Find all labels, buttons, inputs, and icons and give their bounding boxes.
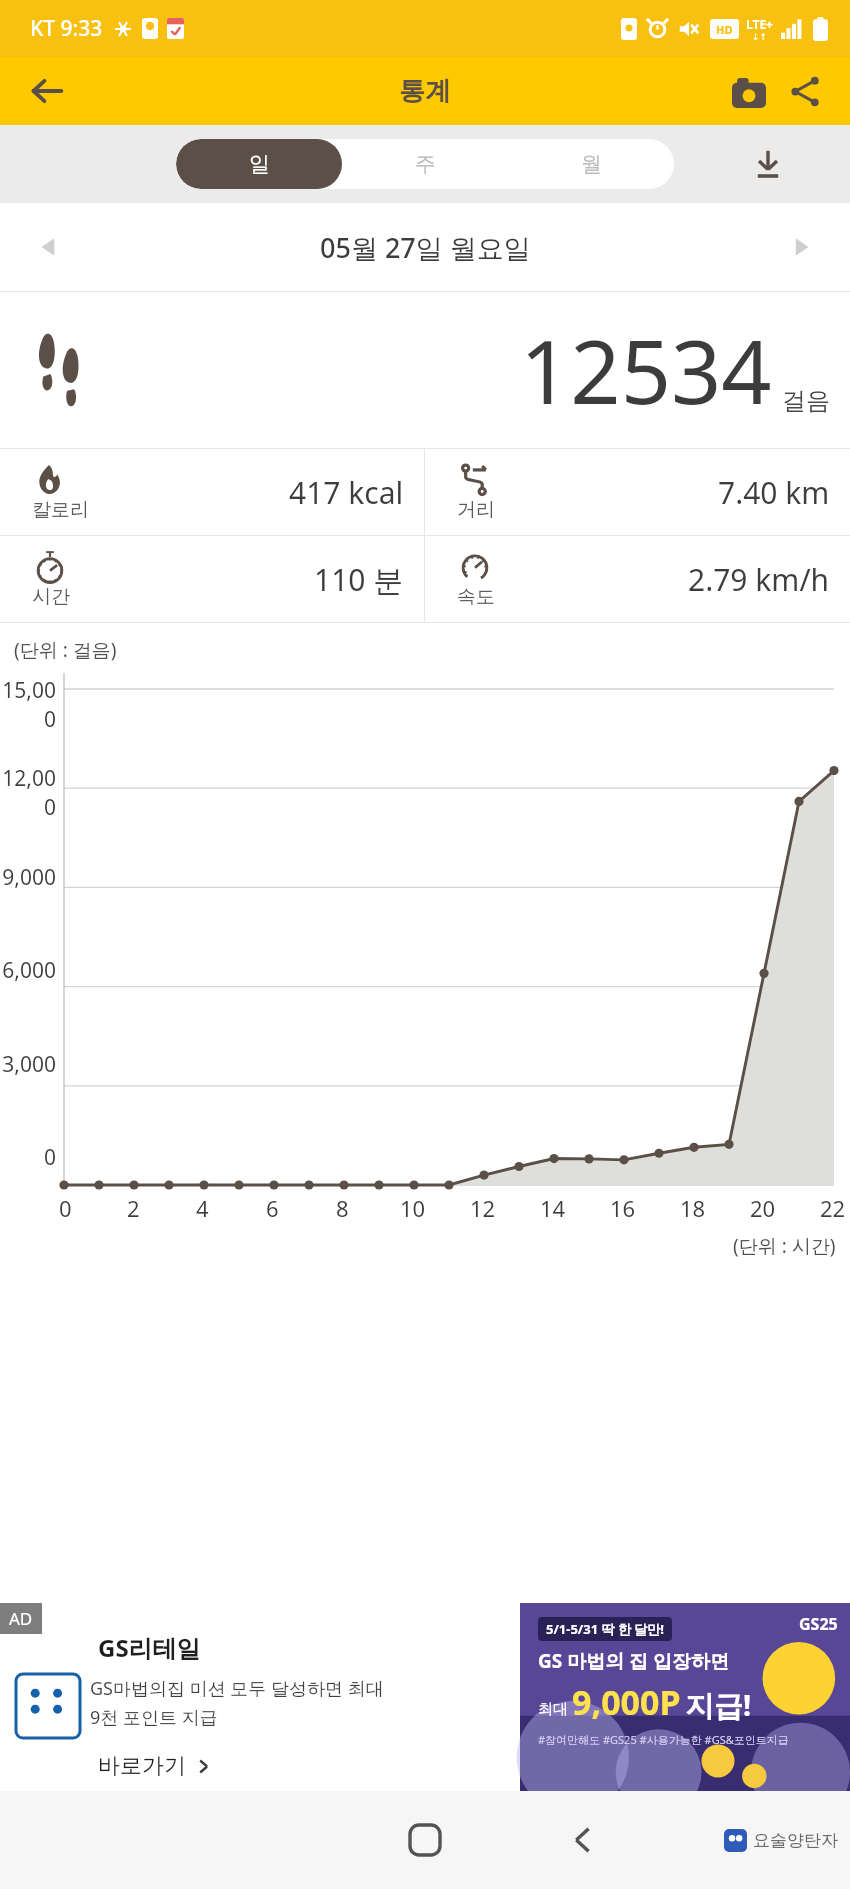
staticText: 월 — [581, 151, 602, 177]
button[interactable]: Back — [552, 1809, 614, 1871]
button[interactable]: 바로가기 — [98, 1752, 211, 1780]
staticText: GS마법의집 미션 모두 달성하면 최대 — [90, 1676, 384, 1701]
button[interactable]: 일 — [176, 139, 342, 189]
staticText: 22 — [820, 1193, 846, 1223]
staticText: 5/1-5/31 딱 한 달만! — [546, 1620, 664, 1638]
staticText: 20 — [750, 1193, 776, 1223]
staticText: 6 — [266, 1193, 279, 1223]
staticText: LTE+ — [746, 16, 773, 32]
staticText: 3,000 — [0, 1050, 56, 1079]
staticText: 최대 — [538, 1700, 568, 1719]
staticText: 칼로리 — [32, 498, 89, 522]
button[interactable]: 속도 — [425, 536, 850, 622]
staticText: (단위 : 걸음) — [14, 637, 117, 663]
button[interactable]: Home — [394, 1809, 456, 1871]
staticText: 9,000 — [0, 863, 56, 892]
staticText: GS리테일 — [98, 1631, 201, 1664]
staticText: 요술양탄자 — [753, 1830, 838, 1851]
button[interactable]: Next day — [778, 224, 824, 270]
staticText: 18 — [680, 1193, 706, 1223]
staticText: 걸음 — [782, 386, 830, 416]
staticText: AD — [9, 1607, 33, 1630]
staticText: (단위 : 시간) — [733, 1233, 836, 1259]
staticText: GS 마법의 집 입장하면 — [538, 1648, 730, 1674]
button[interactable]: Camera — [722, 64, 776, 118]
staticText: 9천 포인트 지급 — [90, 1705, 218, 1730]
button[interactable]: Share — [778, 64, 832, 118]
staticText: 14 — [540, 1193, 566, 1223]
staticText: 시간 — [32, 585, 70, 609]
staticText: 05월 27일 월요일 — [320, 229, 531, 266]
button[interactable]: Back — [20, 64, 74, 118]
staticText: ↓↑ — [752, 32, 768, 42]
button[interactable]: 거리 — [425, 449, 850, 535]
staticText: 주 — [415, 151, 436, 177]
staticText: 0 — [0, 1143, 56, 1172]
staticText: 일 — [249, 151, 270, 177]
staticText: GS25 — [799, 1613, 838, 1635]
button[interactable]: GS리테일 — [0, 1603, 520, 1791]
staticText: 12534 — [520, 310, 772, 430]
staticText: 6,000 — [0, 956, 56, 985]
button[interactable]: 월 — [508, 139, 674, 189]
staticText: #참여만해도 #GS25 #사용가능한 #GS&포인트지급 — [538, 1732, 789, 1747]
staticText: 지급! — [685, 1685, 752, 1725]
staticText: 417 kcal — [289, 472, 404, 513]
staticText: 바로가기 — [98, 1752, 186, 1780]
button[interactable]: 5/1-5/31 딱 한 달만! — [520, 1603, 850, 1791]
staticText: KT 9:33 — [30, 14, 103, 43]
staticText: 12,000 — [0, 764, 56, 822]
staticText: 15,000 — [0, 676, 56, 734]
staticText: 0 — [59, 1193, 72, 1223]
staticText: 12 — [470, 1193, 496, 1223]
staticText: 거리 — [457, 498, 495, 522]
staticText: 110 분 — [314, 559, 404, 600]
staticText: 통계 — [399, 75, 451, 108]
button[interactable]: 칼로리 — [0, 449, 424, 535]
staticText: 9,000P — [572, 1679, 681, 1725]
button[interactable]: 주 — [342, 139, 508, 189]
staticText: 4 — [196, 1193, 209, 1223]
staticText: 10 — [400, 1193, 426, 1223]
button[interactable]: 시간 — [0, 536, 424, 622]
staticText: 속도 — [457, 585, 495, 609]
staticText: 8 — [336, 1193, 349, 1223]
staticText: 16 — [610, 1193, 636, 1223]
button[interactable]: Previous day — [26, 224, 72, 270]
staticText: 2 — [127, 1193, 140, 1223]
button[interactable]: Download — [742, 138, 794, 190]
staticText: 2.79 km/h — [688, 559, 830, 600]
staticText: HD — [716, 22, 733, 37]
staticText: 7.40 km — [718, 472, 830, 513]
